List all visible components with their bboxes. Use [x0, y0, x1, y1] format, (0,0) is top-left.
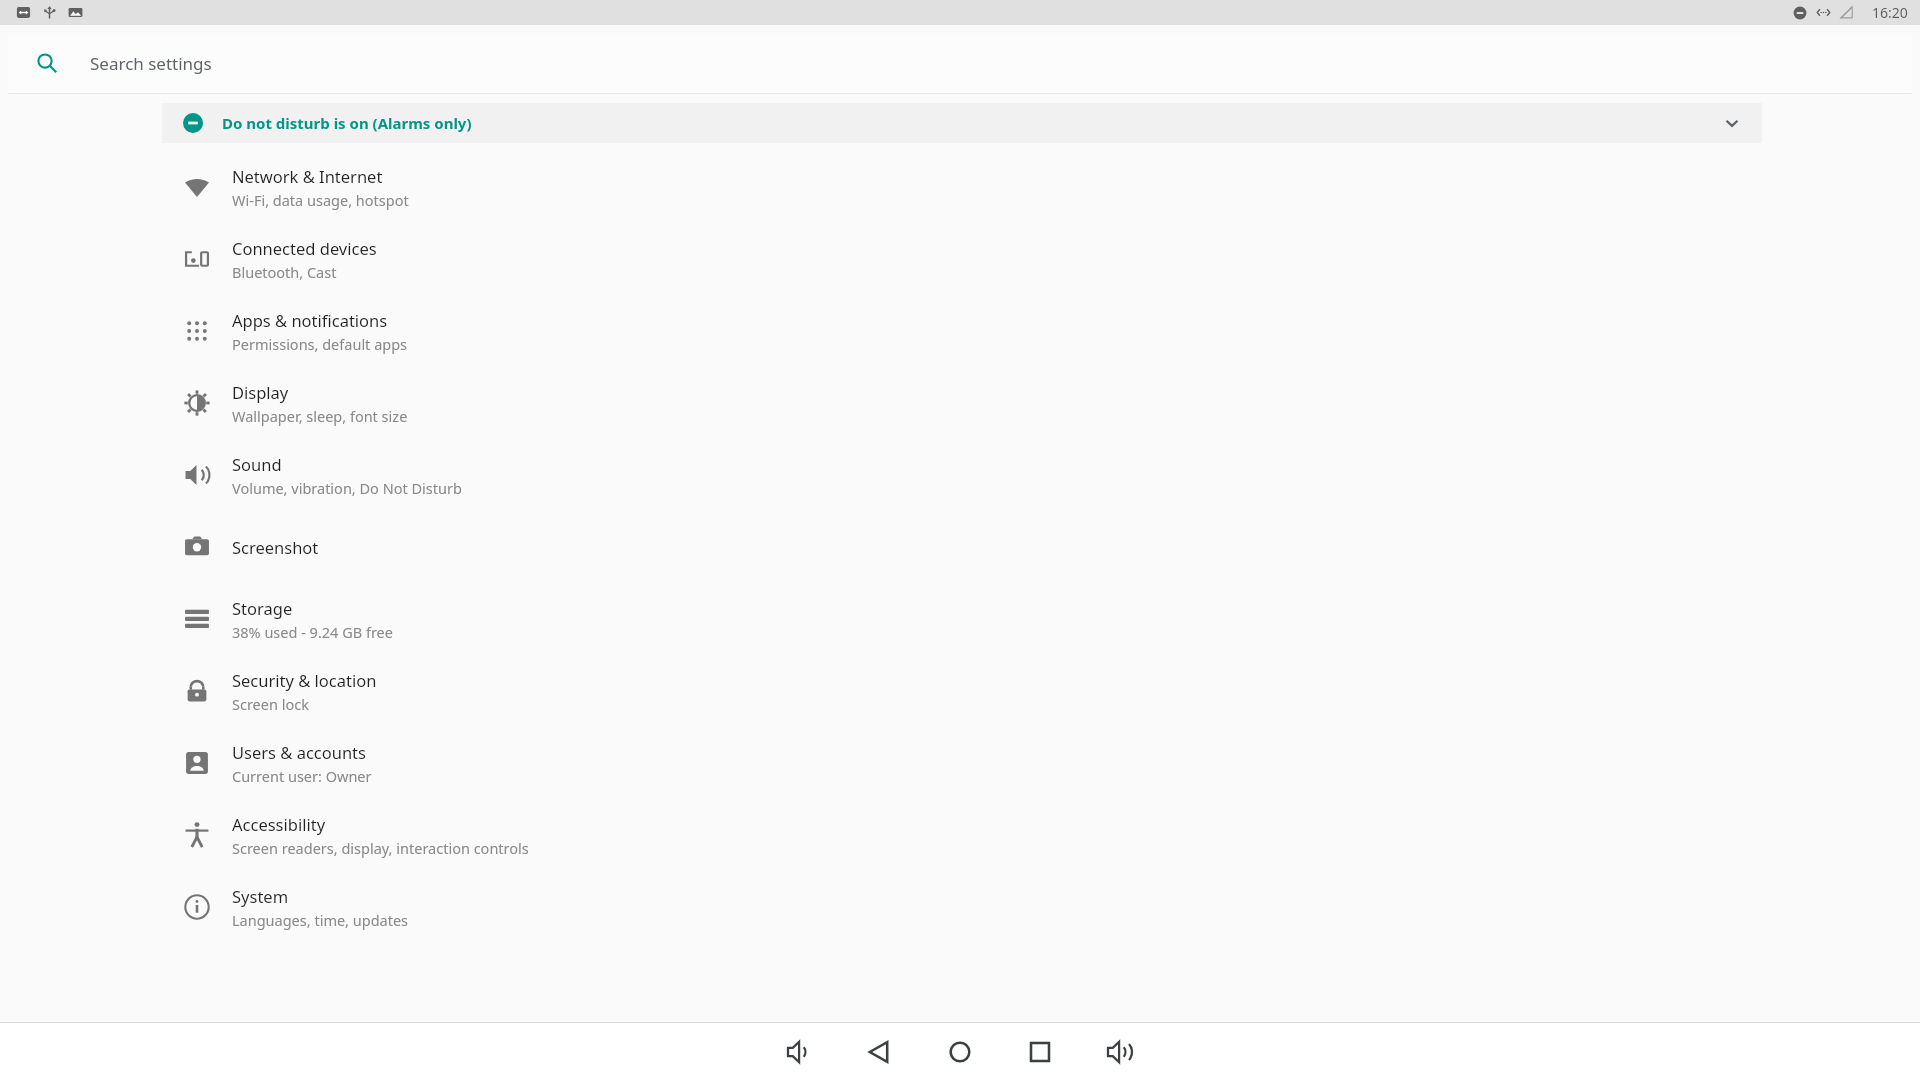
staticText: Languages, time, updates	[232, 910, 409, 930]
staticText: Wi-Fi, data usage, hotspot	[232, 190, 409, 210]
staticText: Apps & notifications	[232, 309, 388, 331]
staticText: Accessibility	[232, 813, 326, 835]
staticText: Permissions, default apps	[232, 334, 408, 354]
button[interactable]: Sound	[0, 439, 1920, 511]
staticText: Security & location	[232, 669, 377, 691]
button[interactable]: Screenshot	[0, 511, 1920, 583]
button[interactable]: Volume down	[760, 1023, 840, 1080]
button[interactable]: Security & location	[0, 655, 1920, 727]
button[interactable]: System	[0, 871, 1920, 943]
staticText: Volume, vibration, Do Not Disturb	[232, 478, 462, 498]
staticText: 38% used - 9.24 GB free	[232, 622, 393, 642]
staticText: Screenshot	[232, 536, 319, 558]
staticText: Storage	[232, 597, 293, 619]
staticText: Network & Internet	[232, 165, 383, 187]
staticText: Display	[232, 381, 289, 403]
staticText: Connected devices	[232, 237, 377, 259]
staticText: Screen readers, display, interaction con…	[232, 838, 529, 858]
other: Search	[36, 52, 58, 74]
staticText: Wallpaper, sleep, font size	[232, 406, 408, 426]
button[interactable]: Recent apps	[1000, 1023, 1080, 1080]
button[interactable]: Network & Internet	[0, 151, 1920, 223]
button[interactable]: Home	[920, 1023, 1000, 1080]
button[interactable]: Users & accounts	[0, 727, 1920, 799]
staticText: Bluetooth, Cast	[232, 262, 337, 282]
button[interactable]: Storage	[0, 583, 1920, 655]
staticText: Do not disturb is on (Alarms only)	[222, 113, 472, 133]
staticText: Search settings	[90, 52, 212, 75]
staticText: System	[232, 885, 289, 907]
button[interactable]: Accessibility	[0, 799, 1920, 871]
button[interactable]: Apps & notifications	[0, 295, 1920, 367]
staticText: Current user: Owner	[232, 766, 372, 786]
staticText: 16:20	[1872, 3, 1908, 22]
button[interactable]: Connected devices	[0, 223, 1920, 295]
button[interactable]: Search	[8, 33, 1912, 93]
button[interactable]: Back	[840, 1023, 920, 1080]
staticText: Screen lock	[232, 694, 309, 714]
staticText: Sound	[232, 453, 282, 475]
button[interactable]: Volume up	[1080, 1023, 1160, 1080]
staticText: Users & accounts	[232, 741, 366, 763]
button[interactable]: Do not disturb is on (Alarms only)	[162, 103, 1762, 143]
button[interactable]: Expand	[1712, 103, 1752, 143]
button[interactable]: Display	[0, 367, 1920, 439]
